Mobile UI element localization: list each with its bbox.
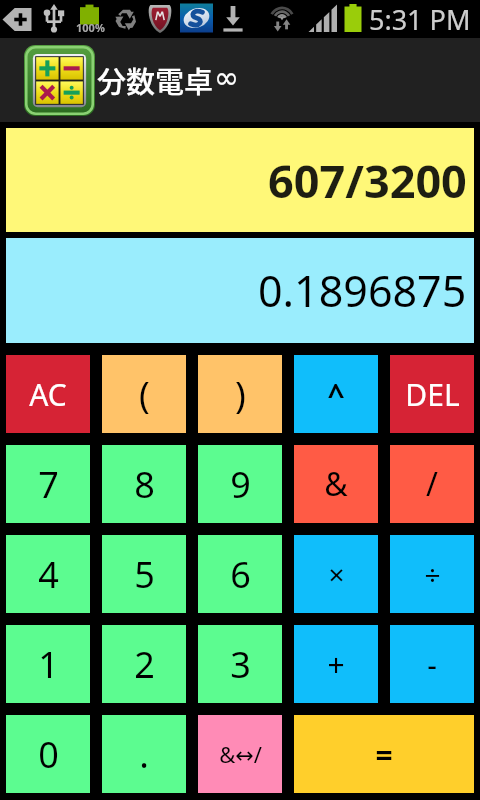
staticText: 4 <box>38 550 59 599</box>
button[interactable]: DEL <box>390 355 474 433</box>
button[interactable]: 4 <box>6 535 90 613</box>
button[interactable]: ( <box>102 355 186 433</box>
staticText: 1 <box>38 640 59 689</box>
staticText: - <box>427 644 437 685</box>
staticText: & <box>324 462 348 506</box>
staticText: 7 <box>38 460 59 509</box>
staticText: 5:31 PM <box>369 1 471 38</box>
button[interactable]: 1 <box>6 625 90 703</box>
button[interactable]: ^ <box>294 355 378 433</box>
staticText: ∞ <box>214 60 239 95</box>
button[interactable]: & <box>294 445 378 523</box>
staticText: 0 <box>38 730 59 779</box>
button[interactable]: 7 <box>6 445 90 523</box>
button[interactable]: 6 <box>198 535 282 613</box>
staticText: 6 <box>230 550 251 599</box>
staticText: ( <box>139 370 150 419</box>
button[interactable]: 607/3200 <box>6 128 474 232</box>
staticText: × <box>328 555 345 593</box>
button[interactable]: 3 <box>198 625 282 703</box>
button[interactable]: 0.1896875 <box>6 238 474 343</box>
staticText: = <box>375 734 393 775</box>
button[interactable]: 2 <box>102 625 186 703</box>
staticText: + <box>327 644 345 685</box>
button[interactable]: 8 <box>102 445 186 523</box>
staticText: &↔/ <box>219 739 262 769</box>
staticText: 8 <box>134 460 155 509</box>
staticText: 100% <box>76 20 105 35</box>
staticText: 2 <box>134 640 155 689</box>
button[interactable]: / <box>390 445 474 523</box>
button[interactable]: . <box>102 715 186 793</box>
staticText: 5 <box>134 550 155 599</box>
staticText: 0.1896875 <box>258 261 467 320</box>
button[interactable]: - <box>390 625 474 703</box>
staticText: ^ <box>327 374 345 415</box>
button[interactable]: = <box>294 715 474 793</box>
staticText: DEL <box>405 374 460 415</box>
button[interactable]: ÷ <box>390 535 474 613</box>
button[interactable]: 0 <box>6 715 90 793</box>
button[interactable]: AC <box>6 355 90 433</box>
button[interactable]: 5 <box>102 535 186 613</box>
staticText: ÷ <box>424 555 441 593</box>
button[interactable]: ) <box>198 355 282 433</box>
button[interactable]: 9 <box>198 445 282 523</box>
staticText: ) <box>235 370 246 419</box>
staticText: AC <box>29 374 67 415</box>
button[interactable]: + <box>294 625 378 703</box>
staticText: 607/3200 <box>268 150 467 211</box>
staticText: . <box>139 730 149 779</box>
staticText: 分数電卓 <box>97 59 214 101</box>
staticText: / <box>426 462 438 506</box>
staticText: 3 <box>230 640 251 689</box>
button[interactable]: &↔/ <box>198 715 282 793</box>
staticText: 9 <box>230 460 251 509</box>
button[interactable]: × <box>294 535 378 613</box>
